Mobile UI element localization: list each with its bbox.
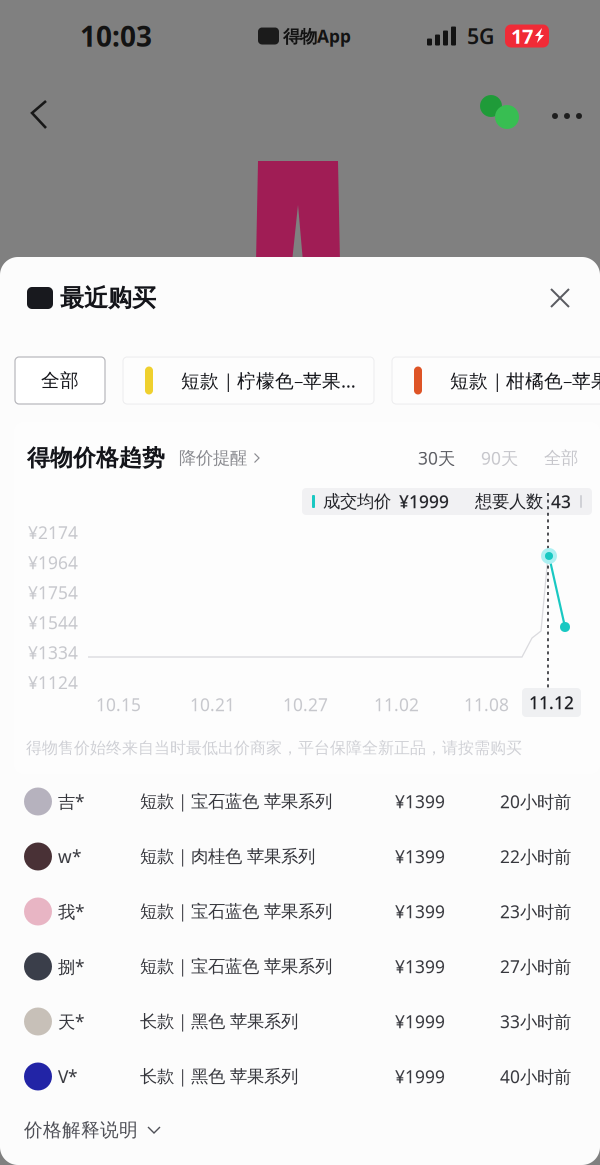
staticText: ¥2174 <box>28 521 78 544</box>
staticText: ¥1399 <box>395 955 445 978</box>
staticText: 天* <box>58 1010 85 1033</box>
staticText: 我* <box>58 900 85 923</box>
staticText: 10:03 <box>80 17 152 55</box>
staticText: 得物售价始终来自当时最低出价商家，平台保障全新正品，请按需购买 <box>26 738 522 758</box>
staticText: ¥1399 <box>395 845 445 868</box>
staticText: 成交均价 <box>323 491 391 512</box>
button[interactable]: 全部 <box>15 357 105 404</box>
button[interactable]: 30天 <box>418 446 455 469</box>
button[interactable]: V* <box>0 1049 600 1104</box>
staticText: 得物App <box>283 24 351 47</box>
button[interactable]: 价格解释说明 <box>0 1104 600 1156</box>
button[interactable]: 短款｜柠檬色–苹果… <box>123 357 374 404</box>
staticText: 全部 <box>41 369 79 392</box>
staticText: 22小时前 <box>500 845 571 868</box>
staticText: 价格解释说明 <box>24 1118 138 1141</box>
staticText: 17 <box>511 23 533 49</box>
staticText: 33小时前 <box>500 1010 571 1033</box>
staticText: 11.02 <box>374 693 419 716</box>
button[interactable]: 吉* <box>0 774 600 829</box>
staticText: 想要人数 <box>475 491 543 512</box>
button[interactable]: More <box>545 94 589 138</box>
button[interactable]: 天* <box>0 994 600 1049</box>
staticText: ¥1999 <box>395 1065 445 1088</box>
staticText: 5G <box>467 22 494 50</box>
staticText: ¥1544 <box>28 611 78 634</box>
staticText: w* <box>58 845 82 868</box>
staticText: 11.12 <box>529 691 574 714</box>
staticText: 短款｜柑橘色–苹果… <box>450 368 600 393</box>
staticText: ¥1399 <box>395 900 445 923</box>
staticText: 40小时前 <box>500 1065 571 1088</box>
staticText: 短款｜宝石蓝色 苹果系列 <box>140 791 332 812</box>
staticText: ¥1124 <box>28 671 78 694</box>
staticText: 捌* <box>58 955 85 978</box>
staticText: ¥1754 <box>28 581 78 604</box>
button[interactable]: 降价提醒 <box>179 447 261 469</box>
staticText: 43 <box>551 490 571 513</box>
staticText: 长款｜黑色 苹果系列 <box>140 1011 298 1032</box>
staticText: 得物价格趋势 <box>27 444 165 472</box>
staticText: 11.08 <box>464 693 509 716</box>
staticText: 90天 <box>481 446 518 469</box>
staticText: ¥1399 <box>395 790 445 813</box>
button[interactable]: 短款｜柑橘色–苹果… <box>392 357 600 404</box>
staticText: 10.21 <box>190 693 235 716</box>
button[interactable]: 90天 <box>481 446 518 469</box>
button[interactable]: Back <box>16 87 60 131</box>
staticText: ¥1999 <box>399 490 449 513</box>
staticText: ¥1334 <box>28 641 78 664</box>
staticText: 30天 <box>418 446 455 469</box>
staticText: ¥1964 <box>28 551 78 574</box>
button[interactable]: Close <box>538 276 582 320</box>
staticText: ¥1999 <box>395 1010 445 1033</box>
button[interactable]: 全部 <box>544 447 578 469</box>
staticText: 最近购买 <box>60 283 156 313</box>
staticText: 10.15 <box>96 693 141 716</box>
staticText: 短款｜肉桂色 苹果系列 <box>140 846 315 867</box>
button[interactable]: w* <box>0 829 600 884</box>
staticText: 全部 <box>544 447 578 469</box>
button[interactable]: 捌* <box>0 939 600 994</box>
button[interactable]: 我* <box>0 884 600 939</box>
staticText: 长款｜黑色 苹果系列 <box>140 1066 298 1087</box>
staticText: 降价提醒 <box>179 447 247 469</box>
staticText: 27小时前 <box>500 955 571 978</box>
staticText: 短款｜柠檬色–苹果… <box>181 368 356 393</box>
staticText: V* <box>58 1065 78 1088</box>
staticText: 短款｜宝石蓝色 苹果系列 <box>140 956 332 977</box>
staticText: 短款｜宝石蓝色 苹果系列 <box>140 901 332 922</box>
button[interactable]: Share to WeChat <box>478 92 522 136</box>
staticText: 10.27 <box>283 693 328 716</box>
staticText: 23小时前 <box>500 900 571 923</box>
staticText: 吉* <box>58 790 85 813</box>
staticText: 20小时前 <box>500 790 571 813</box>
